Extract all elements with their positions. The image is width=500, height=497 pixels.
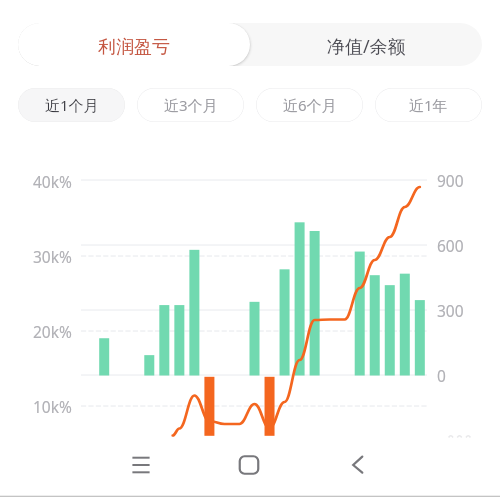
staticText: 900 bbox=[437, 170, 464, 191]
staticText: 近6个月 bbox=[283, 95, 337, 115]
staticText: 净值/余额 bbox=[327, 34, 406, 59]
staticText: 30k% bbox=[33, 246, 72, 267]
staticText: 20k% bbox=[33, 321, 72, 342]
staticText: 10k% bbox=[33, 396, 72, 417]
button[interactable]: 近1年 bbox=[375, 88, 482, 122]
button[interactable]: 近6个月 bbox=[256, 88, 363, 122]
staticText: 40k% bbox=[33, 171, 72, 192]
staticText: 600 bbox=[437, 235, 464, 256]
button[interactable]: 利润盈亏 bbox=[18, 23, 250, 66]
staticText: 近1年 bbox=[409, 95, 448, 115]
staticText: 300 bbox=[437, 300, 464, 321]
button[interactable]: 近3个月 bbox=[137, 88, 244, 122]
button[interactable]: Home bbox=[225, 441, 273, 489]
staticText: 近1个月 bbox=[45, 95, 99, 115]
staticText: 利润盈亏 bbox=[98, 36, 170, 59]
button[interactable]: Recent apps bbox=[117, 441, 165, 489]
button[interactable]: Back bbox=[333, 441, 381, 489]
button[interactable]: 近1个月 bbox=[18, 88, 125, 122]
staticText: 0 bbox=[437, 365, 446, 386]
button[interactable]: 净值/余额 bbox=[250, 23, 482, 66]
staticText: 近3个月 bbox=[164, 95, 218, 115]
